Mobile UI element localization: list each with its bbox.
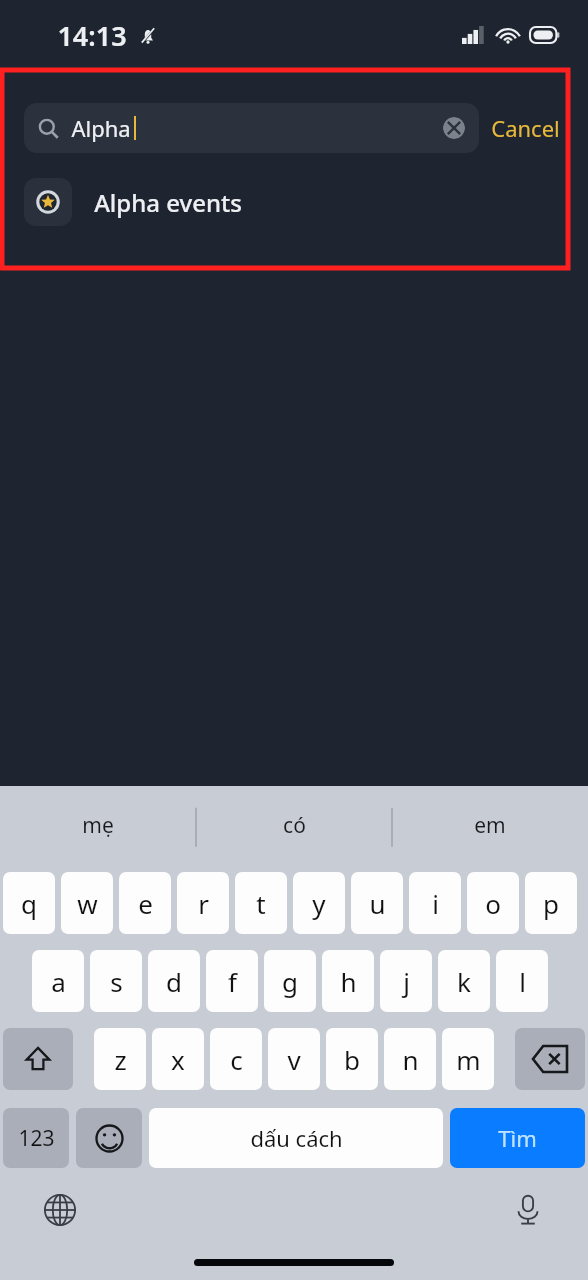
staticText: Alpha: [71, 113, 131, 143]
button[interactable]: b: [326, 1028, 378, 1090]
button[interactable]: dấu cách: [149, 1108, 443, 1168]
button[interactable]: n: [384, 1028, 436, 1090]
button[interactable]: l: [496, 950, 548, 1012]
button[interactable]: o: [467, 872, 519, 934]
button[interactable]: Alpha events: [0, 171, 588, 233]
button[interactable]: j: [380, 950, 432, 1012]
staticText: Cancel: [491, 113, 560, 143]
button[interactable]: Clear text: [443, 117, 465, 139]
staticText: o: [485, 886, 501, 921]
staticText: p: [543, 886, 559, 921]
staticText: j: [403, 964, 410, 999]
staticText: n: [402, 1042, 419, 1077]
button[interactable]: 123: [3, 1108, 69, 1168]
button[interactable]: u: [351, 872, 403, 934]
button[interactable]: g: [264, 950, 316, 1012]
button[interactable]: Voice input: [506, 1188, 550, 1232]
button[interactable]: p: [525, 872, 577, 934]
staticText: z: [114, 1042, 127, 1077]
button[interactable]: w: [61, 872, 113, 934]
button[interactable]: có: [196, 786, 392, 864]
staticText: t: [256, 886, 266, 921]
staticText: 14:13: [57, 17, 127, 54]
button[interactable]: t: [235, 872, 287, 934]
staticText: s: [110, 964, 123, 999]
staticText: w: [77, 886, 98, 921]
button[interactable]: v: [268, 1028, 320, 1090]
staticText: mẹ: [82, 811, 114, 840]
staticText: x: [171, 1042, 185, 1077]
staticText: a: [51, 964, 66, 999]
button[interactable]: i: [409, 872, 461, 934]
button[interactable]: Tìm: [450, 1108, 585, 1168]
button[interactable]: mẹ: [0, 786, 196, 864]
button[interactable]: Alpha: [24, 103, 479, 153]
staticText: y: [312, 886, 326, 921]
staticText: v: [287, 1042, 301, 1077]
staticText: Alpha events: [94, 186, 242, 219]
staticText: có: [283, 811, 306, 840]
button[interactable]: em: [392, 786, 588, 864]
button[interactable]: d: [148, 950, 200, 1012]
staticText: q: [21, 886, 37, 921]
button[interactable]: y: [293, 872, 345, 934]
staticText: dấu cách: [250, 1123, 343, 1153]
button[interactable]: Shift: [3, 1028, 73, 1090]
staticText: l: [519, 964, 526, 999]
staticText: e: [138, 886, 153, 921]
button[interactable]: h: [322, 950, 374, 1012]
button[interactable]: z: [94, 1028, 146, 1090]
staticText: b: [344, 1042, 360, 1077]
button[interactable]: a: [32, 950, 84, 1012]
staticText: r: [198, 886, 209, 921]
button[interactable]: Change keyboard language: [38, 1188, 82, 1232]
button[interactable]: q: [3, 872, 55, 934]
staticText: m: [456, 1042, 481, 1077]
staticText: d: [166, 964, 182, 999]
staticText: c: [230, 1042, 243, 1077]
staticText: k: [457, 964, 471, 999]
button[interactable]: f: [206, 950, 258, 1012]
staticText: em: [474, 811, 506, 840]
button[interactable]: x: [152, 1028, 204, 1090]
staticText: h: [340, 964, 357, 999]
button[interactable]: c: [210, 1028, 262, 1090]
button[interactable]: e: [119, 872, 171, 934]
staticText: f: [228, 964, 237, 999]
button[interactable]: s: [90, 950, 142, 1012]
staticText: Tìm: [498, 1123, 537, 1153]
staticText: g: [282, 964, 298, 999]
button[interactable]: Backspace: [515, 1028, 585, 1090]
staticText: u: [369, 886, 386, 921]
button[interactable]: r: [177, 872, 229, 934]
button[interactable]: k: [438, 950, 490, 1012]
button[interactable]: Emoji: [76, 1108, 142, 1168]
staticText: 123: [18, 1124, 55, 1153]
button[interactable]: m: [442, 1028, 494, 1090]
staticText: i: [432, 886, 439, 921]
button[interactable]: Cancel: [479, 105, 572, 151]
